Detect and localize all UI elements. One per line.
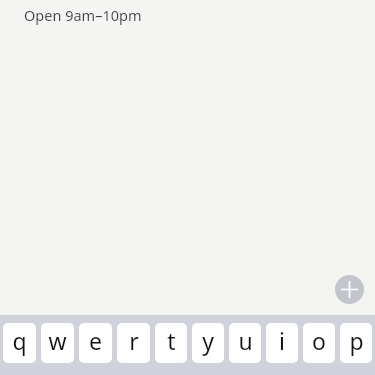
staticText: t — [167, 325, 176, 356]
button[interactable]: t — [155, 323, 187, 363]
button[interactable]: y — [192, 323, 224, 363]
button[interactable]: o — [303, 323, 335, 363]
staticText: q — [12, 325, 27, 356]
button[interactable]: e — [79, 323, 112, 363]
staticText: o — [312, 325, 326, 356]
staticText: Open 9am–10pm — [24, 5, 142, 25]
staticText: w — [48, 325, 67, 356]
button[interactable]: r — [117, 323, 150, 363]
staticText: r — [129, 325, 139, 356]
button[interactable]: w — [41, 323, 74, 363]
staticText: e — [89, 325, 102, 356]
staticText: p — [349, 325, 364, 356]
button[interactable]: Add — [335, 275, 364, 304]
staticText: u — [238, 325, 253, 356]
button[interactable]: i — [266, 323, 298, 363]
button[interactable]: p — [340, 323, 372, 363]
staticText: i — [279, 325, 285, 356]
button[interactable]: u — [229, 323, 261, 363]
button[interactable]: q — [3, 323, 36, 363]
staticText: y — [202, 325, 214, 356]
